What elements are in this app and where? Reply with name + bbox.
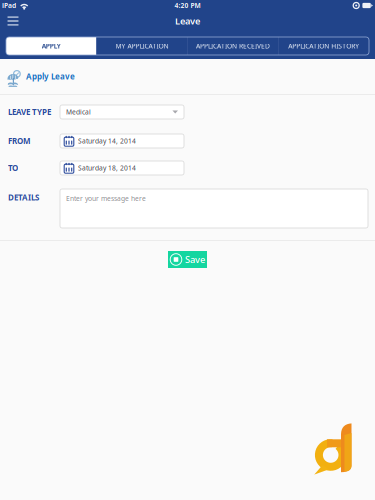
staticText: FROM (8, 136, 31, 146)
button[interactable]: Saturday 14, 2014 (60, 134, 184, 148)
staticText: LEAVE TYPE (8, 107, 51, 117)
button[interactable]: APPLICATION HISTORY (279, 37, 369, 55)
staticText: iPad (2, 1, 16, 10)
staticText: Saturday 18, 2014 (78, 164, 136, 172)
button[interactable]: Menu (0, 11, 26, 31)
staticText: DETAILS (8, 192, 39, 203)
staticText: APPLICATION HISTORY (288, 42, 359, 50)
staticText: Saturday 14, 2014 (78, 137, 136, 145)
button[interactable]: Enter your message here (60, 189, 368, 228)
staticText: Medical (66, 108, 91, 116)
staticText: Apply Leave (26, 71, 75, 82)
button[interactable]: APPLY (6, 37, 96, 55)
staticText: 4:20 PM (174, 1, 200, 10)
staticText: Enter your message here (66, 194, 146, 203)
button[interactable]: Medical (60, 105, 184, 119)
staticText: MY APPLICATION (115, 42, 168, 50)
staticText: APPLY (42, 42, 61, 50)
button[interactable]: Save (168, 251, 207, 268)
staticText: TO (8, 163, 18, 173)
staticText: Leave (175, 15, 200, 27)
button[interactable]: APPLICATION RECEIVED (188, 37, 278, 55)
staticText: Save (185, 253, 205, 266)
button[interactable]: MY APPLICATION (97, 37, 187, 55)
staticText: APPLICATION RECEIVED (196, 42, 270, 50)
button[interactable]: Saturday 18, 2014 (60, 161, 184, 175)
